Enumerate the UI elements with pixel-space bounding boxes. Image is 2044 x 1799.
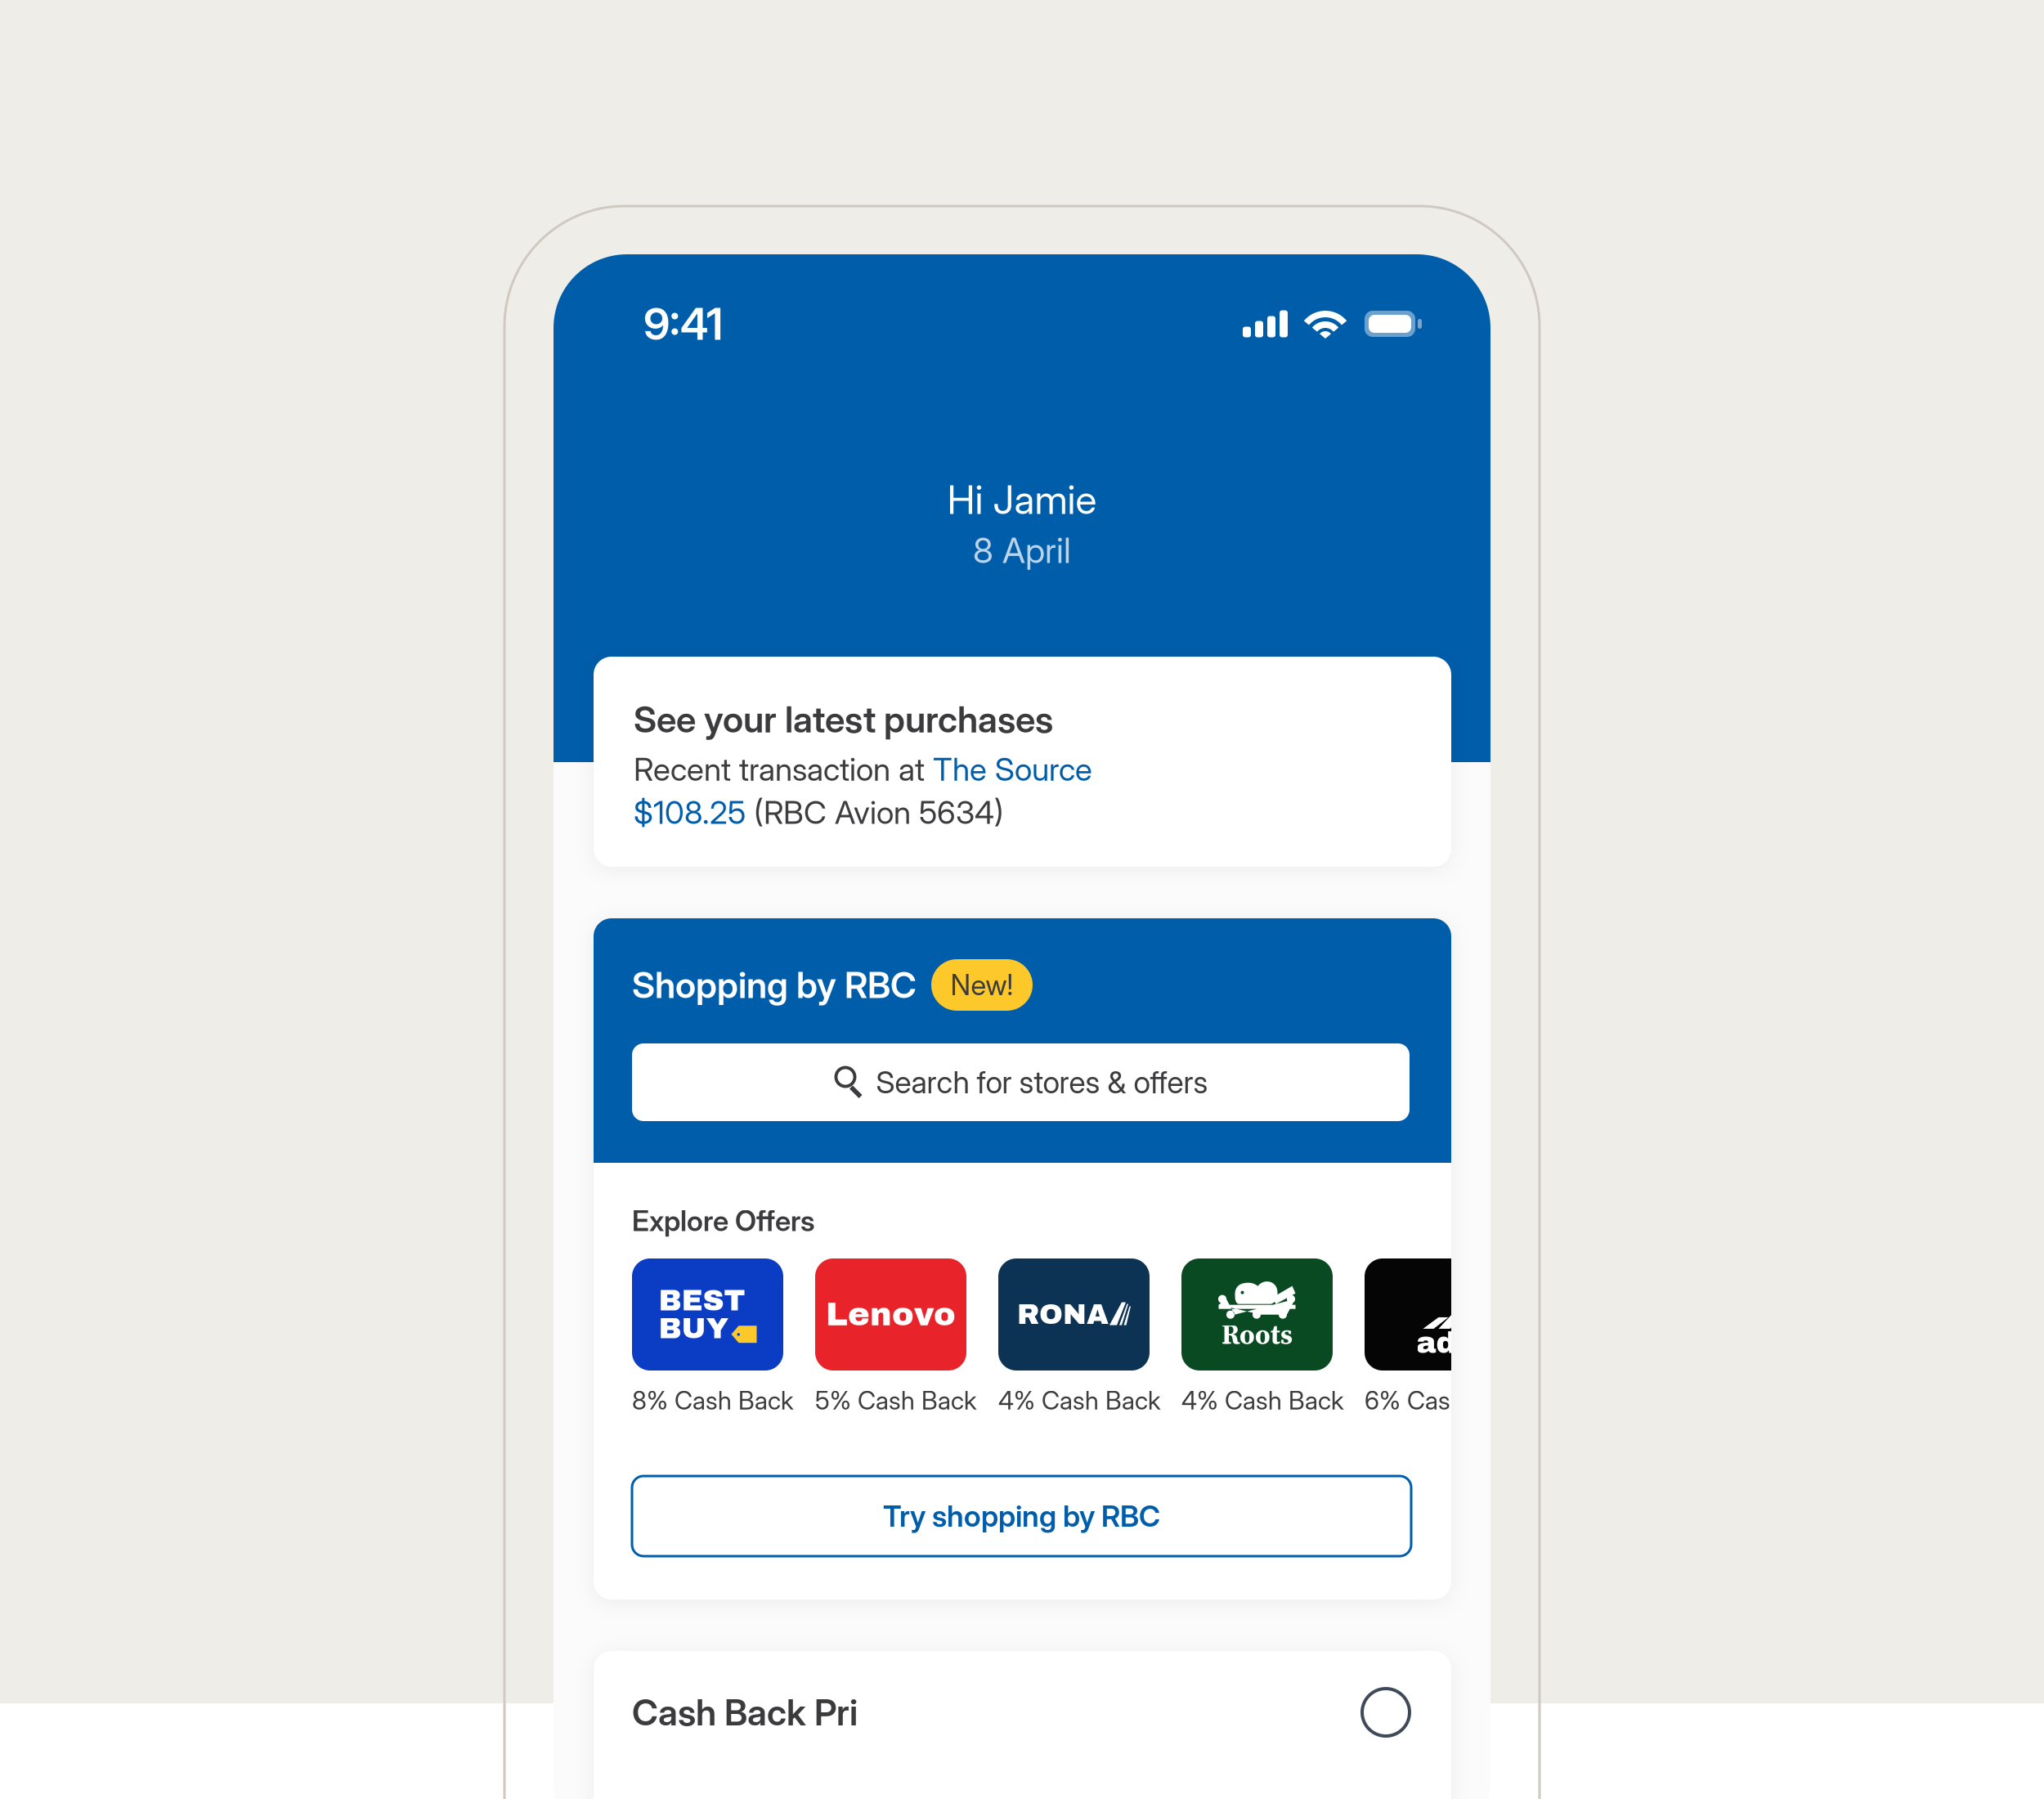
staticText: Hi Jamie [947, 476, 1097, 523]
staticText: 8 April [973, 529, 1071, 571]
button[interactable]: Lenovo [815, 1258, 966, 1416]
staticText: 4% Cash Back [998, 1385, 1161, 1416]
staticText: Shopping by RBC [632, 963, 917, 1007]
staticText: 9:41 [643, 297, 723, 350]
staticText: See your latest purchases [634, 698, 1053, 741]
staticText: Roots [1221, 1315, 1293, 1353]
staticText: BUY [659, 1312, 729, 1345]
staticText: Search for stores & offers [876, 1064, 1208, 1101]
button[interactable]: Cash Back Pri [594, 1651, 1451, 1799]
staticText: Explore Offers [632, 1204, 815, 1238]
staticText: New! [950, 968, 1013, 1002]
button[interactable]: RONA [998, 1258, 1150, 1416]
staticText: 4% Cash Back [1181, 1385, 1344, 1416]
staticText: $108.25 [634, 793, 746, 831]
staticText: The Source [933, 750, 1092, 788]
staticText: 8% Cash Back [632, 1385, 794, 1416]
button[interactable]: Search for stores & offers [632, 1043, 1410, 1121]
staticText: (RBC Avion 5634) [746, 793, 1004, 831]
staticText: BEST [659, 1284, 745, 1317]
button[interactable]: See your latest purchases [594, 657, 1451, 867]
button[interactable]: adidas [1365, 1258, 1516, 1416]
staticText: Try shopping by RBC [883, 1498, 1160, 1534]
staticText: RONA [1017, 1299, 1109, 1330]
staticText: 6% Cash Back [1365, 1385, 1526, 1416]
staticText: Lenovo [826, 1297, 956, 1332]
button[interactable]: BEST [632, 1258, 783, 1416]
staticText: Recent transaction at [634, 750, 933, 788]
staticText: adidas [1416, 1327, 1522, 1359]
button[interactable]: Try shopping by RBC [632, 1476, 1411, 1556]
staticText: Cash Back Pri [632, 1691, 858, 1734]
staticText: 5% Cash Back [815, 1385, 977, 1416]
button[interactable]: Roots [1181, 1258, 1333, 1416]
